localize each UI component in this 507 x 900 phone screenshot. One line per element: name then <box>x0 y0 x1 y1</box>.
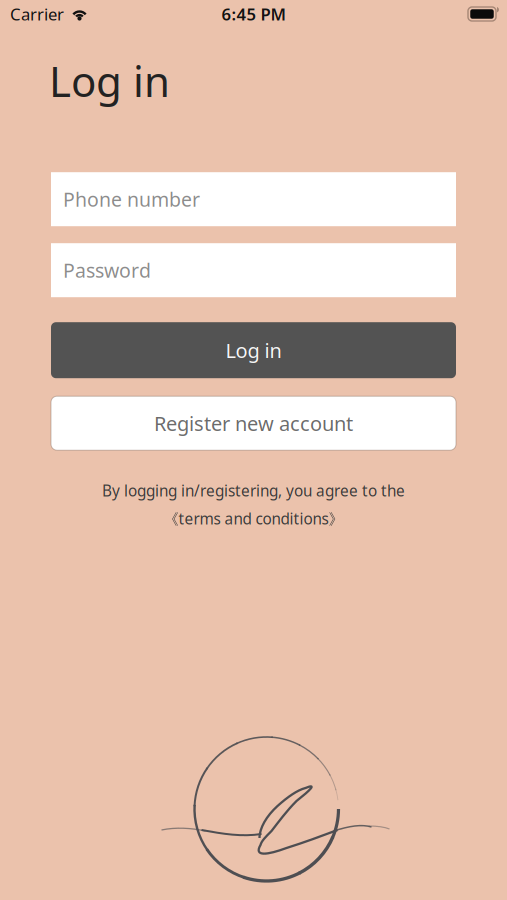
staticText: Phone number <box>63 186 200 212</box>
staticText: Carrier <box>10 3 64 25</box>
staticText: 《terms and conditions》 <box>163 508 343 529</box>
staticText: By logging in/registering, you agree to … <box>102 480 405 501</box>
staticText: Log in <box>225 337 281 364</box>
staticText: Register new account <box>154 410 353 437</box>
staticText: Password <box>63 257 151 283</box>
staticText: 6:45 PM <box>221 3 285 25</box>
button[interactable]: Log in <box>0 322 507 378</box>
staticText: Log in <box>49 52 170 109</box>
button[interactable]: Register new account <box>0 396 507 450</box>
button[interactable]: 《terms and conditions》 <box>163 508 343 529</box>
